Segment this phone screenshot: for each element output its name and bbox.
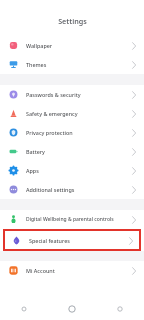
button[interactable]: Digital Wellbeing & parental controls xyxy=(0,210,144,229)
staticText: Special features xyxy=(29,237,129,244)
button[interactable]: Themes xyxy=(0,55,144,74)
staticText: Themes xyxy=(26,61,132,68)
staticText: Battery xyxy=(26,148,132,155)
button[interactable]: Home xyxy=(48,298,96,320)
staticText: Settings xyxy=(58,16,87,26)
staticText: Additional settings xyxy=(26,186,132,193)
button[interactable]: Wallpaper xyxy=(0,36,144,55)
staticText: Digital Wellbeing & parental controls xyxy=(26,216,132,223)
button[interactable]: Back xyxy=(96,298,144,320)
staticText: Passwords & security xyxy=(26,91,132,98)
button[interactable]: Safety & emergency xyxy=(0,104,144,123)
button[interactable]: Mi Account xyxy=(0,261,144,280)
button[interactable]: Battery xyxy=(0,142,144,161)
button[interactable]: Recents xyxy=(0,298,48,320)
button[interactable]: Apps xyxy=(0,161,144,180)
button[interactable]: Privacy protection xyxy=(0,123,144,142)
button[interactable]: Special features xyxy=(3,231,141,250)
staticText: Apps xyxy=(26,167,132,174)
staticText: Safety & emergency xyxy=(26,110,132,117)
staticText: Wallpaper xyxy=(26,42,132,49)
staticText: Privacy protection xyxy=(26,129,132,136)
button[interactable]: Passwords & security xyxy=(0,85,144,104)
button[interactable]: Additional settings xyxy=(0,180,144,199)
staticText: Mi Account xyxy=(26,267,132,274)
